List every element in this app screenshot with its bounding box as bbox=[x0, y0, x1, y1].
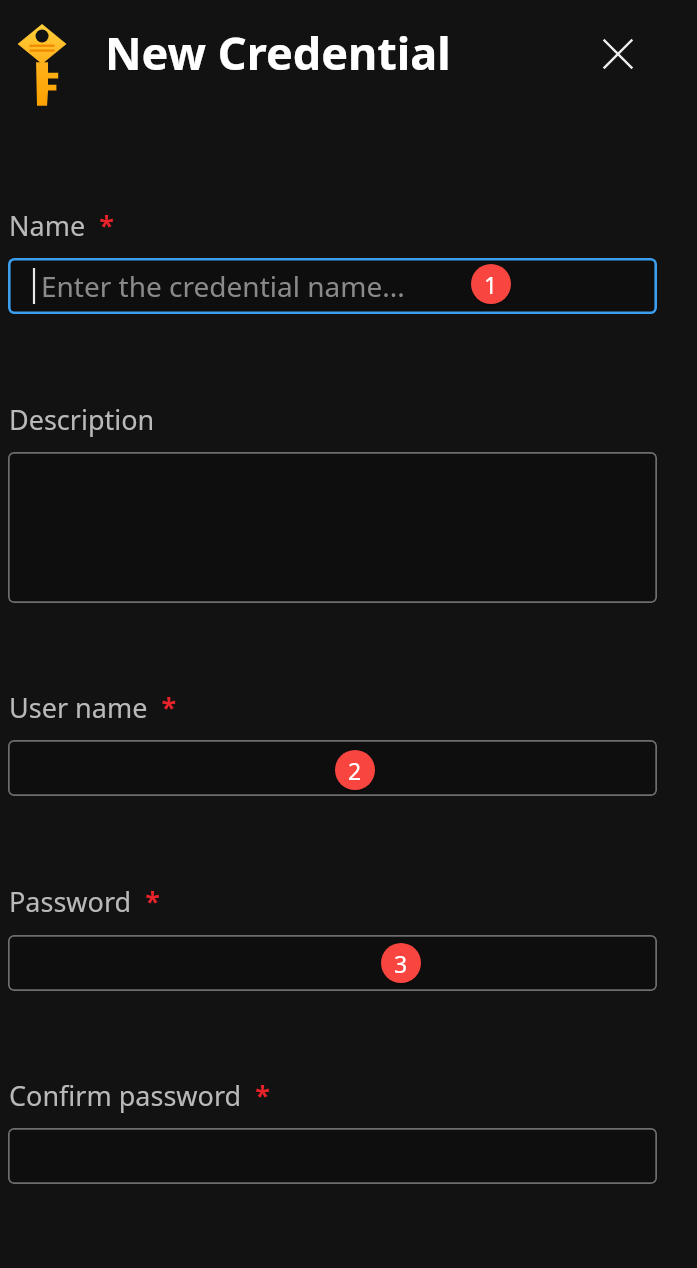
staticText: 2 bbox=[348, 755, 362, 786]
staticText: New Credential bbox=[105, 22, 451, 83]
staticText: Name * bbox=[9, 207, 114, 244]
button[interactable]: Name bbox=[8, 258, 657, 314]
button[interactable]: Description bbox=[8, 452, 657, 603]
staticText: Confirm password * bbox=[9, 1077, 270, 1114]
staticText: Enter the credential name... bbox=[41, 267, 405, 305]
staticText: User name * bbox=[9, 689, 177, 726]
staticText: 3 bbox=[394, 948, 408, 979]
button[interactable]: Close bbox=[588, 24, 648, 84]
button[interactable]: User name bbox=[8, 740, 657, 796]
staticText: 1 bbox=[484, 269, 498, 300]
staticText: Password * bbox=[9, 883, 160, 920]
staticText: Description bbox=[9, 401, 155, 438]
button[interactable]: Confirm password bbox=[8, 1128, 657, 1184]
button[interactable]: Password bbox=[8, 935, 657, 991]
